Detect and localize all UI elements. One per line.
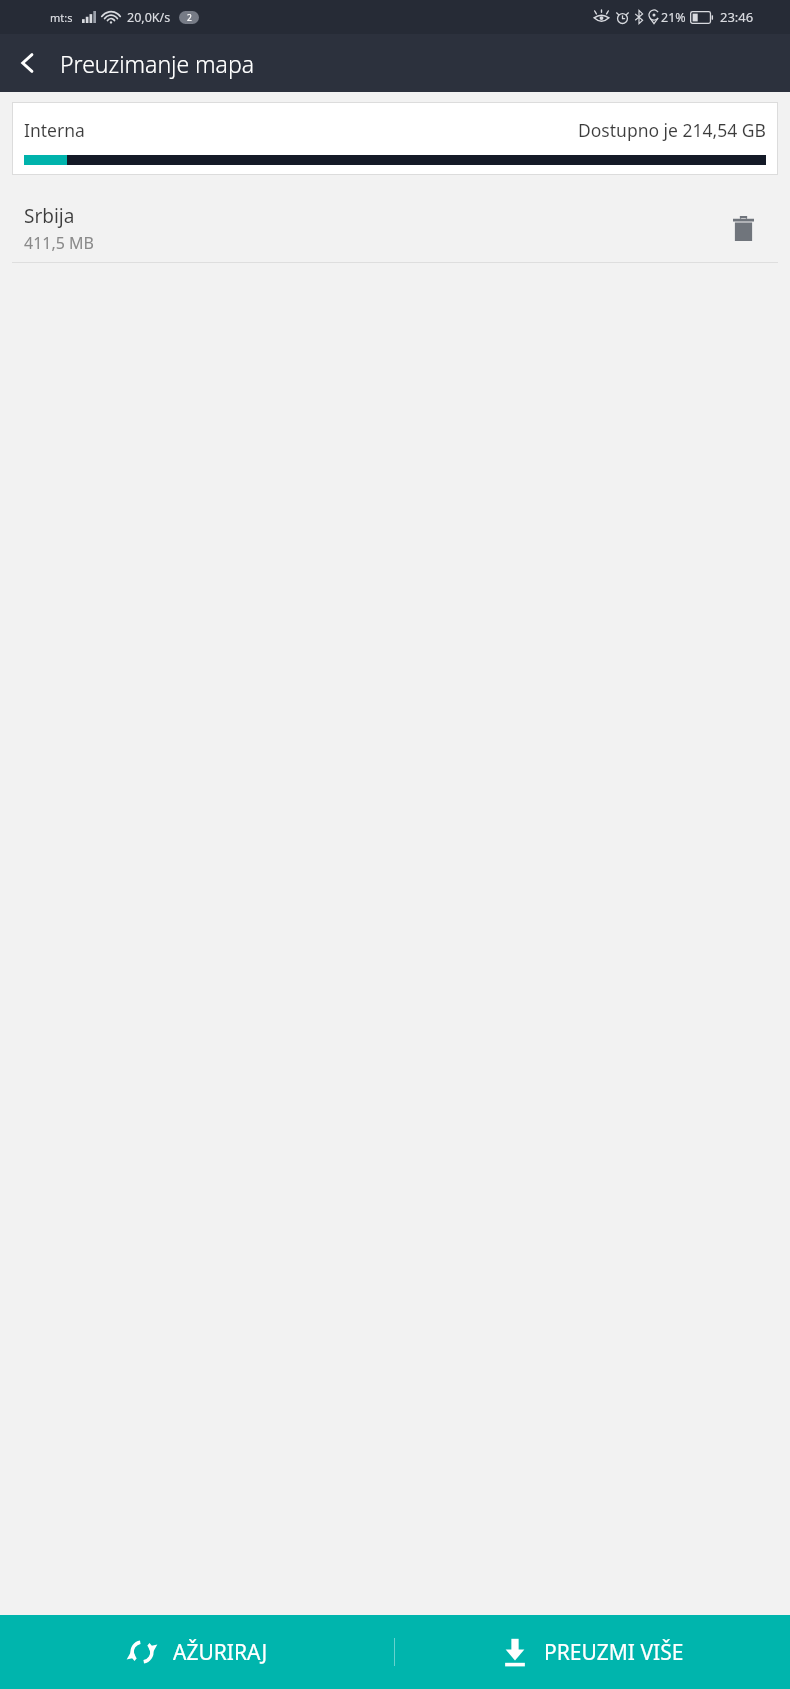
staticText: 411,5 MB	[24, 232, 94, 254]
button[interactable]: AŽURIRAJ	[0, 1615, 394, 1689]
staticText: Preuzimanje mapa	[60, 48, 255, 79]
staticText: 20,0K/s	[127, 9, 171, 26]
button[interactable]: PREUZMI VIŠE	[395, 1615, 790, 1689]
staticText: Srbija	[24, 203, 75, 229]
button[interactable]: Delete	[720, 205, 766, 251]
button[interactable]: Srbija	[0, 194, 790, 262]
staticText: Interna	[24, 118, 85, 142]
staticText: mt:s	[50, 10, 73, 25]
button[interactable]: Back	[0, 35, 56, 91]
staticText: 2	[187, 12, 192, 24]
staticText: PREUZMI VIŠE	[544, 1638, 684, 1667]
staticText: Dostupno je 214,54 GB	[578, 118, 766, 142]
staticText: AŽURIRAJ	[173, 1638, 268, 1667]
staticText: 21%	[661, 9, 686, 26]
staticText: 23:46	[720, 8, 754, 26]
